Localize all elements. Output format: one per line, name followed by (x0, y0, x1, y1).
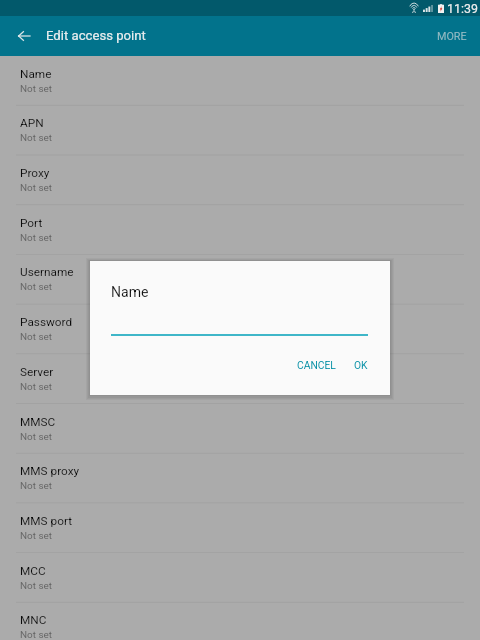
staticText: Not set (20, 381, 53, 393)
staticText: Not set (20, 232, 53, 244)
staticText: 11:39 (447, 1, 478, 16)
staticText: Username (20, 265, 74, 279)
staticText: Port (20, 216, 43, 230)
staticText: Server (20, 365, 54, 379)
staticText: OK (354, 359, 368, 371)
button: Name (90, 261, 390, 395)
button[interactable]: APN (0, 105, 480, 155)
staticText: Not set (20, 281, 53, 293)
staticText: Not set (20, 629, 53, 640)
staticText: Not set (20, 132, 53, 144)
staticText: Not set (20, 480, 53, 492)
staticText: MMSC (20, 415, 56, 429)
staticText: Name (111, 284, 149, 300)
button[interactable]: MCC (0, 553, 480, 603)
button[interactable]: Username (0, 254, 480, 304)
staticText: Not set (20, 431, 53, 443)
staticText: Edit access point (46, 28, 146, 43)
button[interactable]: MORE (429, 21, 475, 52)
button[interactable]: Port (0, 205, 480, 255)
staticText: Not set (20, 530, 53, 542)
staticText: Not set (20, 182, 53, 194)
button[interactable]: Server (0, 354, 480, 404)
staticText: MMS proxy (20, 464, 80, 478)
button[interactable]: Proxy (0, 155, 480, 205)
staticText: MCC (20, 564, 46, 578)
button[interactable]: Name (0, 56, 480, 106)
staticText: MORE (437, 30, 467, 43)
staticText: Not set (20, 331, 53, 343)
button[interactable]: CANCEL (289, 353, 344, 377)
staticText: Password (20, 315, 73, 329)
staticText: MNC (20, 613, 47, 627)
button[interactable]: OK (346, 353, 376, 377)
staticText: CANCEL (297, 359, 336, 371)
staticText: Proxy (20, 166, 50, 180)
button[interactable]: MMSC (0, 404, 480, 454)
staticText: MMS port (20, 514, 73, 528)
staticText: Not set (20, 83, 53, 95)
button[interactable]: Password (0, 304, 480, 354)
staticText: APN (20, 116, 44, 130)
staticText: Not set (20, 580, 53, 592)
button[interactable]: MMS proxy (0, 453, 480, 503)
button[interactable]: Navigate up (6, 18, 42, 54)
staticText: Name (20, 67, 52, 81)
button[interactable]: MMS port (0, 503, 480, 553)
button[interactable]: MNC (0, 602, 480, 640)
